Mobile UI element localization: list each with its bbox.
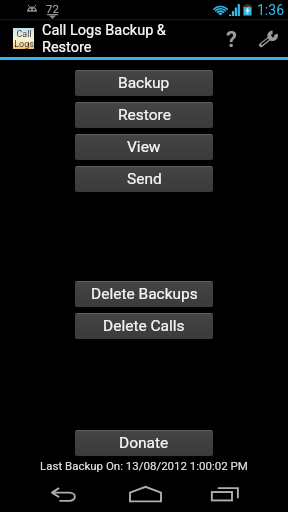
staticText: Delete Calls xyxy=(103,317,185,335)
staticText: Send xyxy=(127,170,162,188)
button[interactable]: Recent apps xyxy=(195,478,255,512)
staticText: Delete Backups xyxy=(91,285,198,303)
staticText: ? xyxy=(226,27,237,53)
button[interactable]: Restore xyxy=(75,102,213,128)
button[interactable]: Back xyxy=(34,478,94,512)
staticText: Donate xyxy=(119,434,169,452)
button[interactable]: Backup xyxy=(75,70,213,96)
staticText: View xyxy=(127,138,161,156)
button[interactable]: Help xyxy=(214,19,248,57)
button[interactable]: Delete Backups xyxy=(75,281,213,307)
staticText: Call Logs Backup & Restore xyxy=(42,22,214,55)
staticText: Call Logs xyxy=(14,29,34,49)
staticText: 1:36 xyxy=(257,2,284,18)
button[interactable]: View xyxy=(75,134,213,160)
staticText: Backup xyxy=(118,74,170,92)
button[interactable]: Settings xyxy=(248,19,288,57)
button[interactable]: Send xyxy=(75,166,213,192)
staticText: 72 xyxy=(46,2,59,15)
button[interactable]: Donate xyxy=(75,430,213,456)
staticText: Restore xyxy=(118,106,171,124)
staticText: Last Backup On: 13/08/2012 1:00:02 PM xyxy=(40,459,248,472)
button[interactable]: Home xyxy=(115,478,175,512)
button[interactable]: Delete Calls xyxy=(75,313,213,339)
